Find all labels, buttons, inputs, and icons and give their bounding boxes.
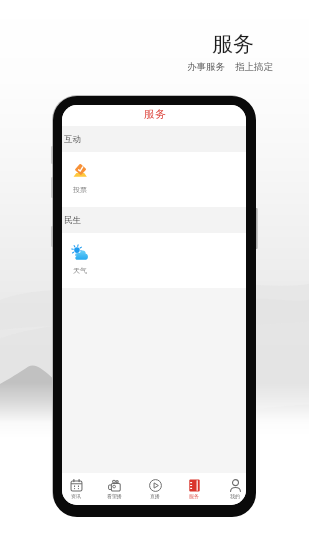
staticText: 天气 — [73, 266, 87, 275]
staticText: 服务 — [212, 31, 254, 57]
staticText: 看望播 — [107, 493, 122, 499]
button[interactable]: 我的 — [219, 473, 246, 505]
button[interactable]: 资讯 — [62, 473, 92, 505]
staticText: 直播 — [150, 493, 160, 499]
staticText: 服务 — [144, 107, 166, 121]
staticText: 我的 — [230, 493, 240, 499]
staticText: 民生 — [64, 215, 81, 226]
button[interactable]: 投票 — [66, 152, 94, 207]
staticText: 服务 — [189, 493, 199, 499]
button[interactable]: 服务 — [178, 473, 210, 505]
button[interactable]: 天气 — [66, 233, 94, 288]
button[interactable]: 直播 — [139, 473, 171, 505]
button[interactable]: 看望播 — [98, 473, 130, 505]
staticText: 互动 — [64, 134, 81, 145]
staticText: 资讯 — [71, 493, 81, 499]
staticText: 投票 — [73, 185, 87, 194]
staticText: 办事服务 指上搞定 — [187, 60, 273, 73]
